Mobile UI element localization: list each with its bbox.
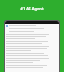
staticText: #1 AI Agent: [0, 6, 64, 11]
